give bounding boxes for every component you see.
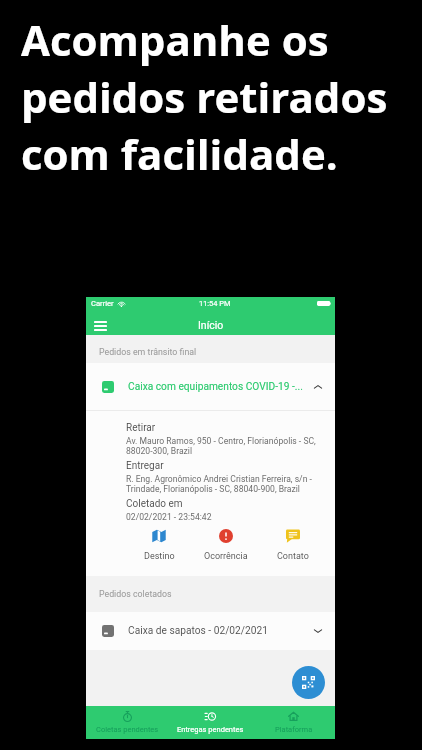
staticText: R. Eng. Agronômico Andrei Cristian Ferre… [126,474,312,494]
button[interactable]: Open navigation menu [91,316,110,335]
staticText: Carrier [91,299,114,308]
staticText: Pedidos em trânsito final [99,347,197,357]
button[interactable]: Ocorrência [192,529,259,562]
staticText: Plataforma [275,725,313,734]
staticText: Contato [277,551,309,562]
button[interactable]: Destino [126,529,192,562]
button[interactable]: Caixa de sapatos - 02/02/2021 [86,612,335,650]
button[interactable]: Coletas pendentes [86,706,169,739]
staticText: Caixa com equipamentos COVID-19 -... [128,381,310,393]
staticText: Av. Mauro Ramos, 950 - Centro, Florianóp… [126,436,316,456]
button[interactable]: Plataforma [252,706,335,739]
button[interactable]: Contato [259,529,326,562]
staticText: Caixa de sapatos - 02/02/2021 [128,625,313,637]
staticText: Ocorrência [204,551,248,562]
staticText: Coletado em [126,498,183,510]
staticText: Início [198,319,224,331]
staticText: Destino [144,551,175,562]
staticText: 02/02/2021 - 23:54:42 [126,512,212,522]
button[interactable]: Entregas pendentes [169,706,252,739]
staticText: Acompanhe os pedidos retirados com facil… [21,11,388,182]
staticText: Entregar [126,460,164,472]
button[interactable]: Caixa com equipamentos COVID-19 -... [86,363,335,410]
button[interactable]: Scan QR code [292,666,325,699]
staticText: Entregas pendentes [177,725,244,734]
staticText: 11:54 PM [199,299,231,308]
staticText: Pedidos coletados [99,589,172,599]
staticText: Retirar [126,422,156,434]
staticText: Coletas pendentes [96,725,159,734]
